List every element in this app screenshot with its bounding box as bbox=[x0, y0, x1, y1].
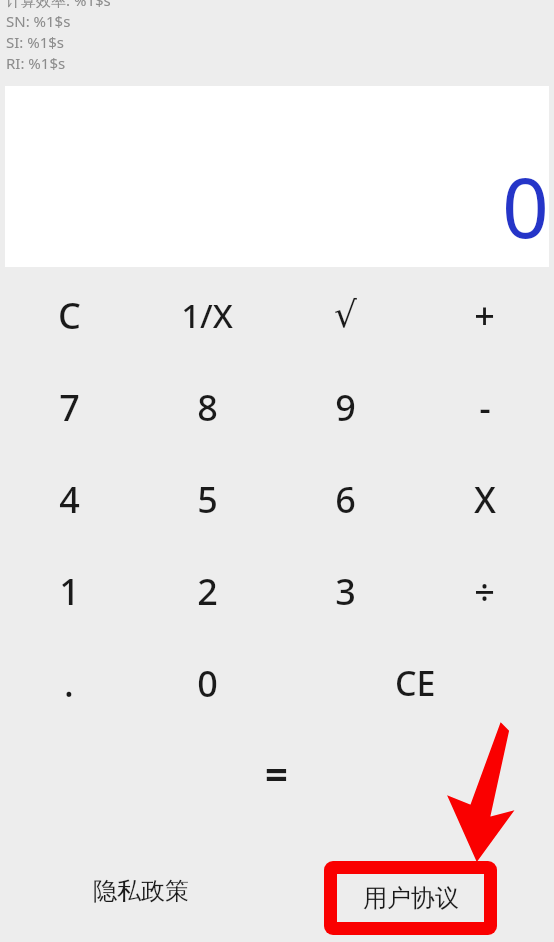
staticText: - bbox=[479, 383, 491, 432]
button[interactable]: 0 bbox=[138, 637, 277, 729]
button[interactable]: 1 bbox=[0, 545, 138, 637]
staticText: 4 bbox=[59, 475, 80, 524]
button[interactable]: 8 bbox=[138, 361, 276, 453]
staticText: 0 bbox=[502, 150, 549, 262]
staticText: 5 bbox=[197, 475, 218, 524]
staticText: ÷ bbox=[474, 567, 495, 616]
staticText: 用户协议 bbox=[363, 883, 459, 913]
button[interactable]: ÷ bbox=[415, 545, 554, 637]
button[interactable]: 5 bbox=[138, 453, 276, 545]
staticText: + bbox=[474, 291, 495, 340]
staticText: 1 bbox=[59, 567, 80, 616]
staticText: RI: %1$s bbox=[6, 53, 66, 73]
button[interactable]: - bbox=[415, 361, 554, 453]
button[interactable]: 2 bbox=[138, 545, 276, 637]
staticText: 隐私政策 bbox=[93, 876, 189, 906]
button[interactable]: CE bbox=[277, 637, 554, 729]
staticText: 8 bbox=[197, 383, 218, 432]
button[interactable]: 0 bbox=[5, 86, 549, 267]
staticText: 计算效率: %1$s bbox=[6, 0, 111, 10]
button[interactable]: = bbox=[236, 738, 316, 808]
staticText: SN: %1$s bbox=[6, 11, 71, 31]
staticText: 9 bbox=[335, 383, 356, 432]
staticText: 6 bbox=[335, 475, 356, 524]
button[interactable]: 1/X bbox=[138, 269, 276, 361]
staticText: C bbox=[58, 291, 81, 340]
staticText: X bbox=[474, 475, 496, 524]
button[interactable]: 7 bbox=[0, 361, 138, 453]
button[interactable]: + bbox=[415, 269, 554, 361]
button[interactable]: 用户协议 bbox=[337, 874, 484, 922]
button[interactable]: 9 bbox=[276, 361, 415, 453]
button[interactable]: 3 bbox=[276, 545, 415, 637]
staticText: SI: %1$s bbox=[6, 32, 65, 52]
button[interactable]: √ bbox=[276, 269, 415, 361]
button[interactable]: 4 bbox=[0, 453, 138, 545]
staticText: . bbox=[64, 659, 74, 708]
button[interactable]: . bbox=[0, 637, 138, 729]
button[interactable]: C bbox=[0, 269, 138, 361]
other: Pointer arrow bbox=[0, 0, 554, 942]
staticText: 0 bbox=[197, 659, 218, 708]
staticText: = bbox=[265, 746, 288, 800]
staticText: CE bbox=[395, 660, 436, 706]
button[interactable]: X bbox=[415, 453, 554, 545]
staticText: 3 bbox=[335, 567, 356, 616]
staticText: 1/X bbox=[181, 293, 233, 338]
button[interactable]: 6 bbox=[276, 453, 415, 545]
button[interactable]: 隐私政策 bbox=[81, 863, 201, 918]
staticText: √ bbox=[334, 294, 357, 336]
staticText: 2 bbox=[197, 567, 218, 616]
staticText: 7 bbox=[59, 383, 80, 432]
